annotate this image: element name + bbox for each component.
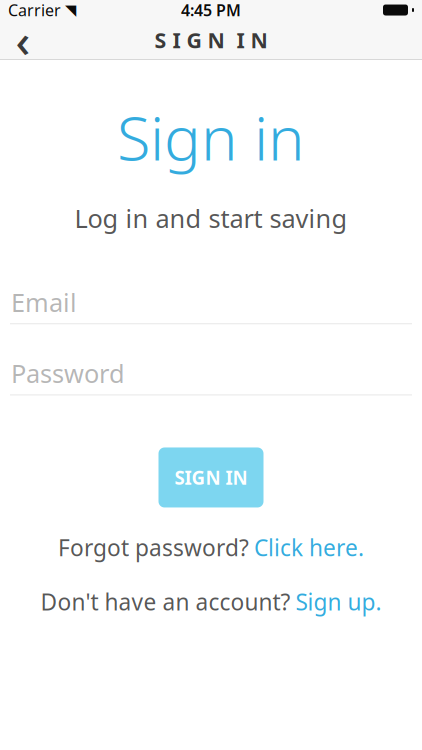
staticText: Don't have an account?	[40, 587, 290, 617]
staticText: ◥	[65, 2, 76, 18]
staticText: Sign up.	[295, 587, 381, 617]
staticText: 4:45 PM	[181, 0, 241, 21]
staticText: Click here.	[254, 532, 364, 563]
staticText: Password	[11, 356, 125, 390]
staticText: Email	[11, 285, 77, 319]
button[interactable]: Back	[0, 20, 46, 60]
staticText: SIGN IN	[174, 465, 247, 490]
staticText: S I G N I N	[154, 26, 267, 54]
staticText: Forgot password?	[58, 532, 249, 563]
staticText: Sign in	[117, 96, 305, 177]
staticText: Log in and start saving	[74, 201, 347, 235]
staticText: Carrier	[8, 0, 61, 21]
button[interactable]: Don't have an account?	[0, 580, 422, 624]
button[interactable]: SIGN IN	[158, 447, 263, 507]
button[interactable]: Forgot password?	[0, 525, 422, 570]
staticText: ‹	[15, 10, 30, 70]
